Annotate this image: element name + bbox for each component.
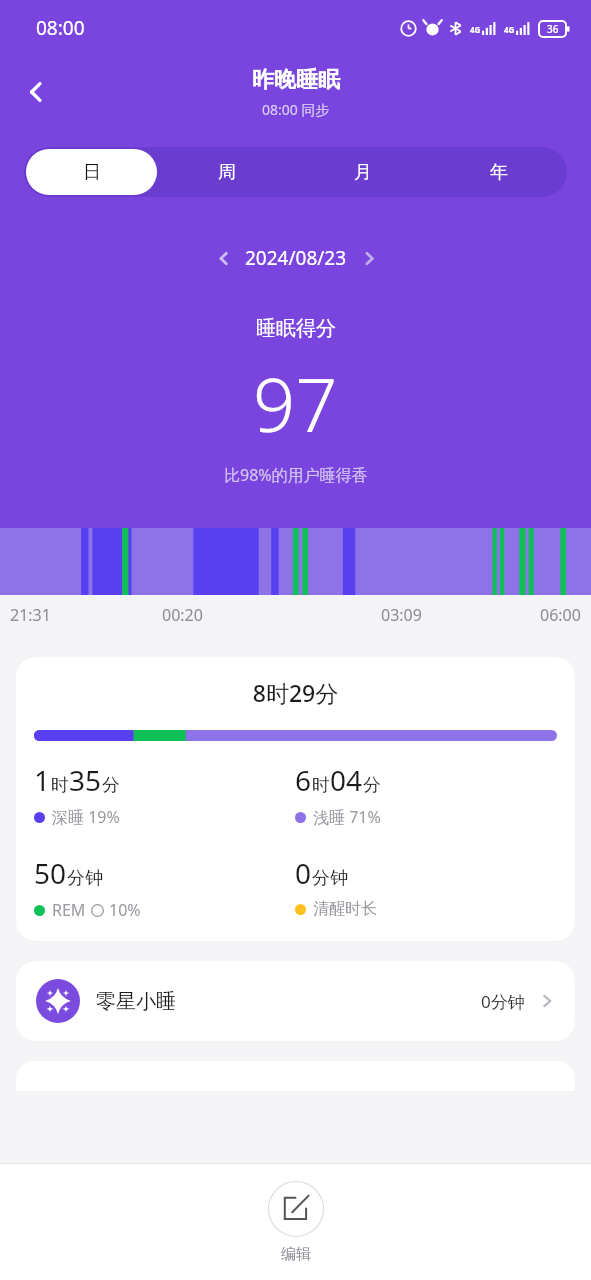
staticText: 4G	[470, 24, 481, 35]
staticText: 分钟	[312, 867, 348, 890]
staticText: 时	[51, 774, 69, 797]
staticText: 10%	[109, 899, 141, 921]
staticText: 06:00	[540, 604, 581, 626]
staticText: 04	[330, 761, 363, 799]
staticText: REM	[52, 899, 86, 921]
staticText: 分	[102, 774, 120, 797]
button[interactable]: Next day	[351, 240, 387, 276]
staticText: 年	[490, 161, 508, 184]
button[interactable]: 编辑	[0, 1164, 591, 1280]
button[interactable]: 月	[297, 149, 429, 195]
staticText: 08:00 同步	[262, 100, 330, 119]
staticText: 月	[354, 161, 372, 184]
staticText: 21:31	[10, 604, 51, 626]
staticText: 4G	[504, 24, 515, 35]
button[interactable]: 周	[161, 149, 293, 195]
staticText: 日	[83, 161, 101, 184]
staticText: 0	[295, 854, 312, 892]
button[interactable]: 日	[26, 149, 157, 195]
button[interactable]: 零星小睡	[16, 961, 575, 1041]
staticText: 清醒时长	[313, 899, 377, 919]
staticText: 0分钟	[481, 990, 525, 1013]
staticText: 分	[363, 774, 381, 797]
staticText: 00:20	[162, 604, 203, 626]
staticText: 深睡 19%	[52, 806, 120, 828]
staticText: 睡眠得分	[256, 316, 336, 341]
button[interactable]: 8时29分	[16, 657, 575, 941]
staticText: 时	[312, 774, 330, 797]
staticText: 零星小睡	[96, 989, 176, 1014]
staticText: 浅睡 71%	[313, 806, 381, 828]
staticText: 6	[295, 761, 312, 799]
staticText: 35	[69, 761, 102, 799]
button[interactable]: Back	[12, 68, 60, 116]
staticText: 08:00	[36, 15, 85, 41]
staticText: 编辑	[281, 1245, 311, 1264]
button[interactable]: 年	[433, 149, 565, 195]
button[interactable]: Previous day	[205, 240, 241, 276]
staticText: 97	[253, 353, 338, 454]
staticText: 50	[34, 854, 67, 892]
staticText: 03:09	[381, 604, 422, 626]
staticText: 8时29分	[34, 677, 557, 708]
staticText: 36	[547, 22, 559, 36]
staticText: 比98%的用户睡得香	[224, 464, 368, 486]
staticText: 1	[34, 761, 51, 799]
staticText: 昨晚睡眠	[252, 66, 340, 94]
staticText: 周	[218, 161, 236, 184]
staticText: 分钟	[67, 867, 103, 890]
staticText: 2024/08/23	[245, 245, 347, 271]
